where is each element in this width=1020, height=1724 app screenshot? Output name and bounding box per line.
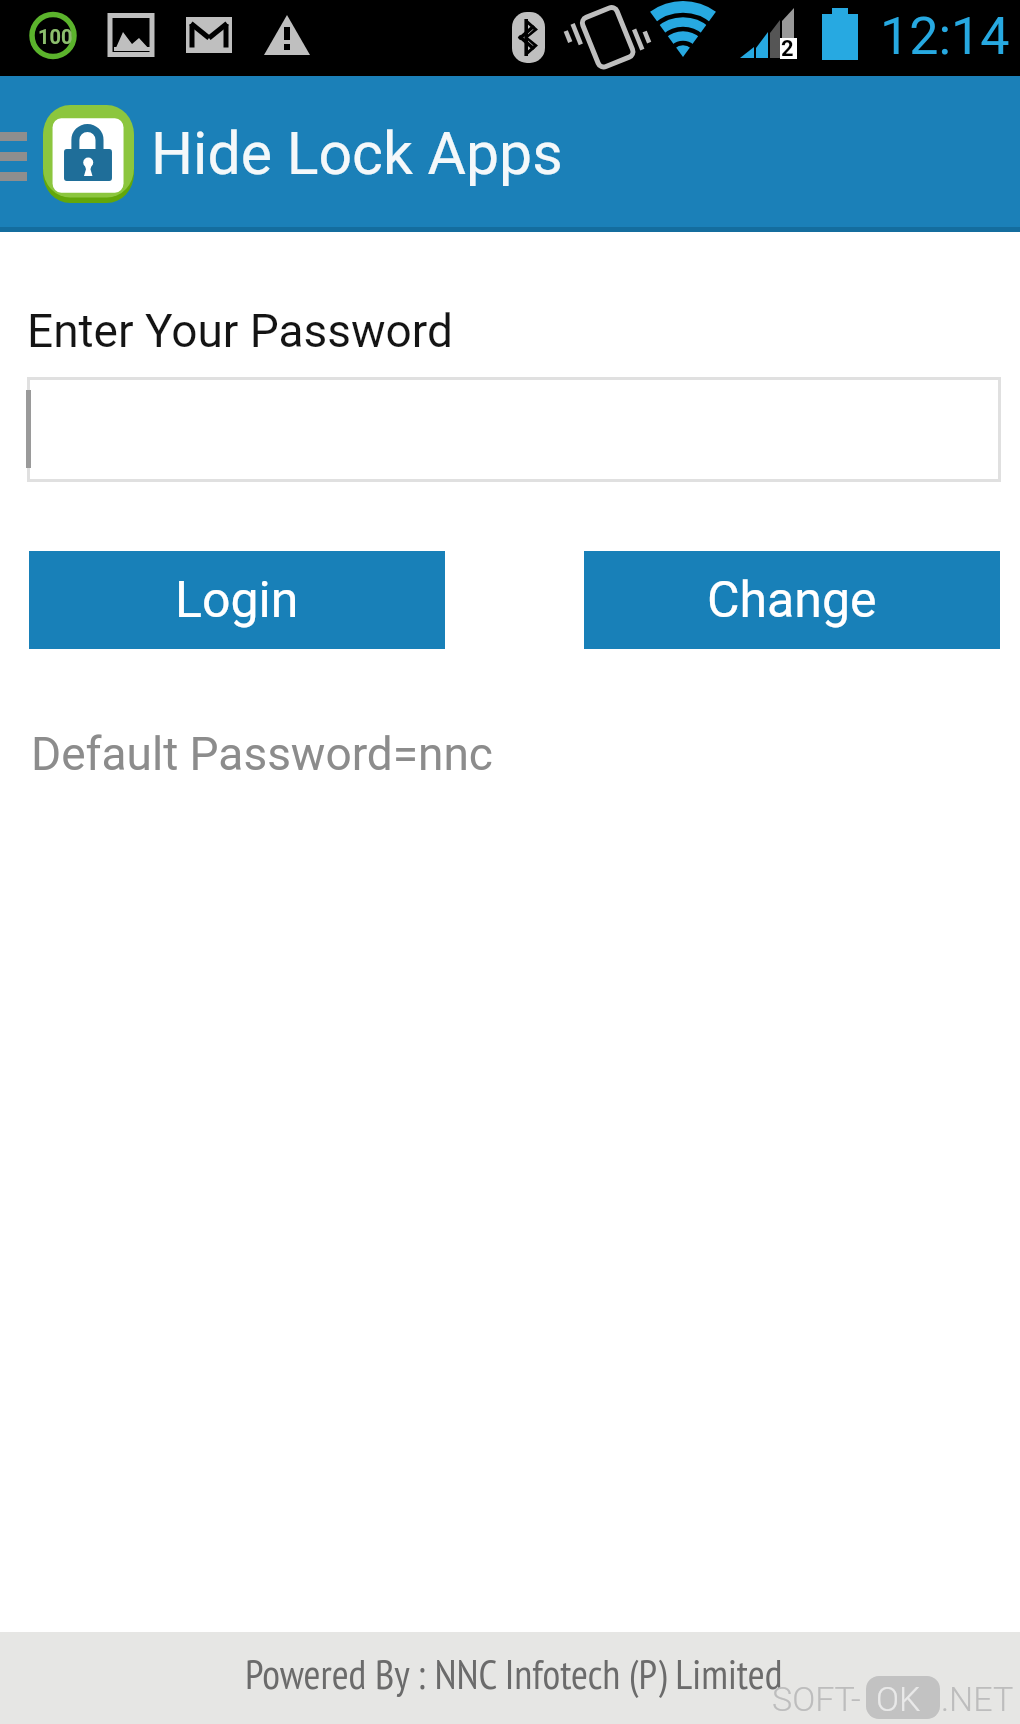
staticText: 2 bbox=[781, 36, 794, 62]
staticText: 100 bbox=[38, 25, 73, 48]
button[interactable]: Open navigation menu bbox=[0, 124, 27, 184]
staticText: Default Password=nnc bbox=[31, 727, 493, 781]
staticText: Login bbox=[175, 571, 299, 630]
staticText: Powered By : NNC Infotech (P) Limited bbox=[245, 1647, 783, 1700]
button[interactable]: Change bbox=[584, 551, 1000, 649]
button[interactable]: Login bbox=[29, 551, 445, 649]
staticText: OK bbox=[876, 1679, 921, 1719]
staticText: .NET bbox=[941, 1679, 1014, 1719]
staticText: 12:14 bbox=[880, 6, 1010, 67]
staticText: SOFT- bbox=[772, 1679, 861, 1719]
staticText: Hide Lock Apps bbox=[151, 119, 563, 188]
staticText: Change bbox=[707, 571, 877, 630]
button[interactable]: Password input field bbox=[27, 377, 1001, 482]
staticText: Enter Your Password bbox=[27, 304, 453, 358]
